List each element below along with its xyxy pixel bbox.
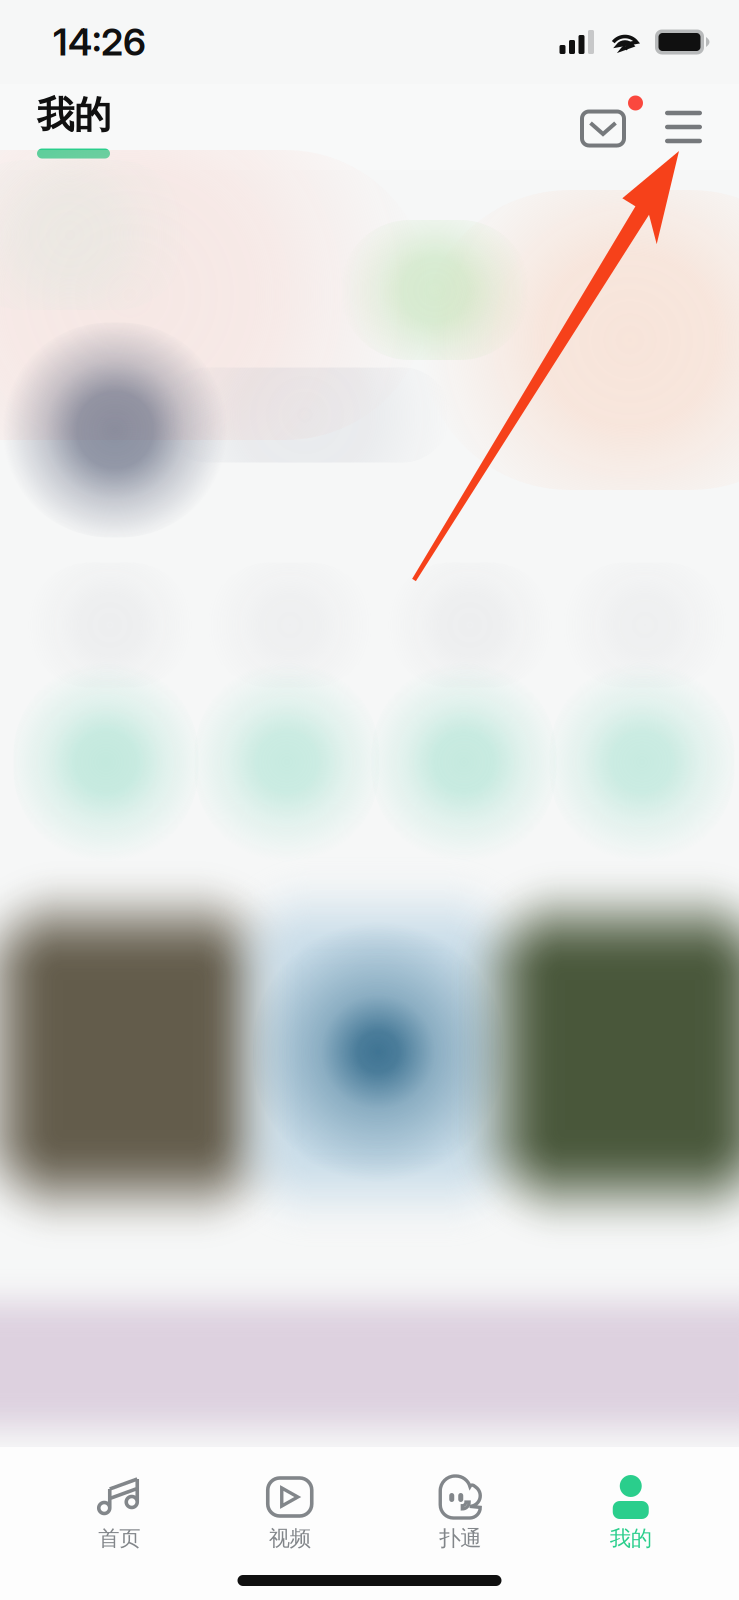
button[interactable]: 视频 <box>204 1447 375 1575</box>
button[interactable]: Messages <box>575 95 646 158</box>
button[interactable]: 我的 <box>545 1447 716 1575</box>
staticText: 我的 <box>610 1525 652 1552</box>
button[interactable]: 扑通 <box>375 1447 545 1575</box>
button[interactable]: Menu <box>646 94 721 160</box>
staticText: 我的 <box>37 91 111 138</box>
staticText: 首页 <box>98 1525 140 1552</box>
staticText: 视频 <box>269 1525 311 1552</box>
staticText: 14:26 <box>53 19 146 65</box>
staticText: 扑通 <box>439 1525 481 1552</box>
button[interactable]: 首页 <box>34 1447 204 1575</box>
